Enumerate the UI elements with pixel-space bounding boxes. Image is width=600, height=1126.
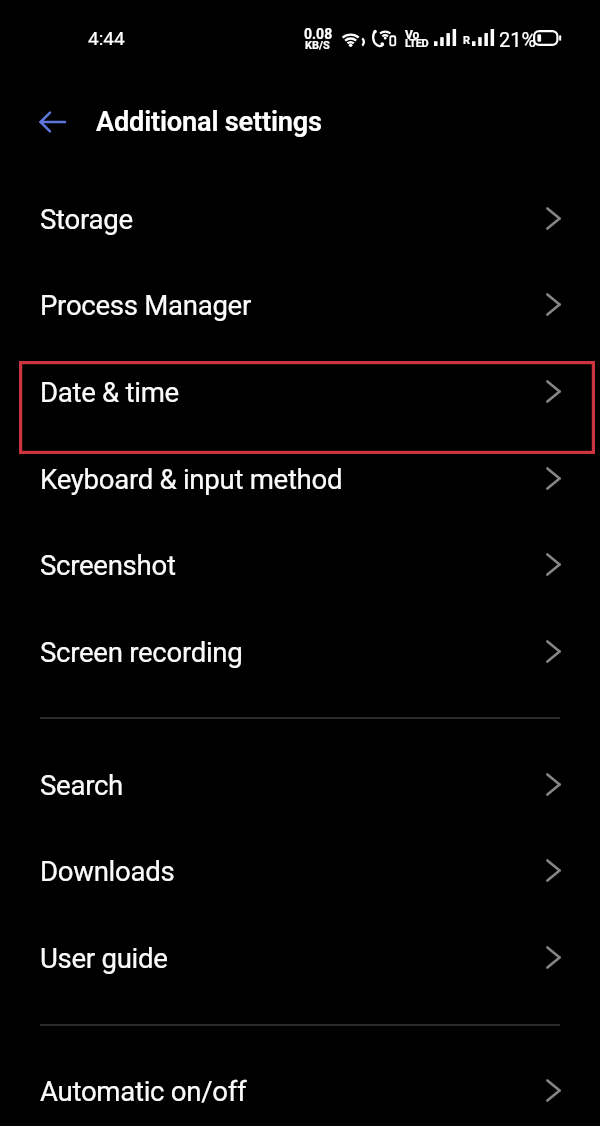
- staticText: LTED: [405, 37, 429, 50]
- button[interactable]: User guide: [0, 914, 600, 1001]
- staticText: Date & time: [40, 376, 179, 408]
- button[interactable]: Automatic on/off: [0, 1047, 600, 1126]
- button[interactable]: Search: [0, 741, 600, 828]
- staticText: Downloads: [40, 855, 175, 887]
- button[interactable]: Screenshot: [0, 521, 600, 608]
- staticText: 21%: [499, 28, 537, 51]
- button[interactable]: Back: [22, 88, 82, 156]
- button[interactable]: Keyboard & input method: [0, 435, 600, 522]
- button[interactable]: Downloads: [0, 827, 600, 914]
- button[interactable]: Screen recording: [0, 608, 600, 695]
- staticText: Screenshot: [40, 549, 176, 581]
- staticText: Process Manager: [40, 289, 251, 321]
- staticText: R: [463, 34, 471, 47]
- staticText: Automatic on/off: [40, 1075, 247, 1107]
- button[interactable]: Storage: [0, 175, 600, 262]
- staticText: 4:44: [88, 27, 125, 49]
- staticText: Additional settings: [96, 106, 322, 138]
- button[interactable]: Process Manager: [0, 261, 600, 348]
- staticText: User guide: [40, 942, 168, 974]
- staticText: Search: [40, 769, 123, 801]
- staticText: Storage: [40, 203, 133, 235]
- staticText: Vo: [405, 28, 420, 42]
- staticText: KB/S: [305, 39, 330, 52]
- staticText: Screen recording: [40, 636, 243, 668]
- staticText: 0.08: [304, 26, 333, 42]
- button[interactable]: Date & time: [0, 348, 600, 435]
- staticText: Keyboard & input method: [40, 463, 343, 495]
